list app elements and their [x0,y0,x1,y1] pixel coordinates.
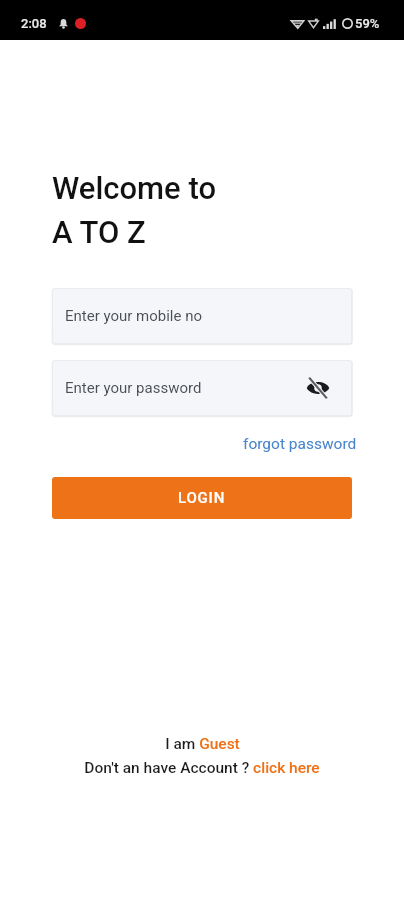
staticText: 2:08 [21,16,47,31]
staticText: LOGIN [178,489,226,507]
staticText: Enter your password [65,379,202,397]
button[interactable]: Enter your password [52,360,352,416]
button[interactable]: Enter your mobile no [52,288,352,344]
staticText: Enter your mobile no [65,307,203,325]
staticText: forgot password [243,435,357,453]
button[interactable]: I am Guest [165,735,240,753]
staticText: A TO Z [52,214,146,250]
button[interactable]: LOGIN [52,477,352,519]
button[interactable]: Show password [303,373,333,403]
button[interactable]: forgot password [229,429,357,453]
staticText: 59% [355,16,380,31]
button[interactable]: Don't an have Account ? click here [84,759,320,777]
staticText: Welcome to [52,170,216,206]
